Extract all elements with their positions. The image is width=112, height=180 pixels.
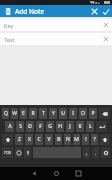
staticText: Y xyxy=(52,110,55,117)
button[interactable]: Emoji xyxy=(15,147,22,158)
button[interactable]: G xyxy=(46,121,54,132)
staticText: ! xyxy=(85,136,87,143)
button[interactable]: ? xyxy=(91,134,98,145)
staticText: N xyxy=(66,136,70,143)
button[interactable]: Save xyxy=(100,6,111,17)
button[interactable]: Z xyxy=(15,134,23,145)
staticText: M xyxy=(74,136,79,143)
button[interactable]: Home xyxy=(45,167,67,180)
button[interactable]: B xyxy=(55,134,62,145)
button[interactable]: V xyxy=(45,134,53,145)
button[interactable]: F xyxy=(36,121,44,132)
staticText: G xyxy=(48,123,52,130)
button[interactable]: Key xyxy=(0,19,112,31)
button[interactable]: , xyxy=(83,147,90,158)
button[interactable]: ! xyxy=(82,134,89,145)
staticText: R xyxy=(31,110,35,117)
button[interactable]: N xyxy=(64,134,71,145)
button[interactable]: Backspace xyxy=(99,108,110,119)
staticText: V xyxy=(47,136,51,143)
staticText: X xyxy=(28,136,31,143)
staticText: W xyxy=(12,110,17,117)
button[interactable]: Shift xyxy=(2,134,13,145)
button[interactable]: Note xyxy=(2,6,13,17)
button[interactable]: I xyxy=(69,108,77,119)
button[interactable]: Recents xyxy=(67,167,89,180)
button[interactable]: . xyxy=(92,147,99,158)
staticText: Key xyxy=(4,22,14,29)
staticText: L xyxy=(89,123,92,130)
button[interactable]: Shift xyxy=(100,134,110,145)
staticText: P xyxy=(91,110,95,117)
staticText: S xyxy=(19,123,22,130)
staticText: E xyxy=(22,110,25,117)
button[interactable]: Discard xyxy=(89,6,100,17)
button[interactable]: R xyxy=(29,108,37,119)
staticText: O xyxy=(81,110,85,117)
staticText: Add Note xyxy=(15,7,45,16)
button[interactable]: O xyxy=(79,108,87,119)
button[interactable]: E xyxy=(20,108,27,119)
button[interactable]: P xyxy=(89,108,97,119)
button[interactable]: Back xyxy=(23,167,45,180)
button[interactable]: Text xyxy=(0,33,112,45)
staticText: H xyxy=(58,123,62,130)
button[interactable]: L xyxy=(86,121,94,132)
button[interactable]: Voice input xyxy=(24,147,31,158)
staticText: T xyxy=(42,110,45,117)
button[interactable]: W xyxy=(11,108,18,119)
button[interactable]: D xyxy=(26,121,34,132)
button[interactable]: C xyxy=(35,134,43,145)
staticText: ? xyxy=(93,136,96,143)
button[interactable]: Clear Text xyxy=(101,34,111,44)
button[interactable]: M xyxy=(73,134,80,145)
staticText: I xyxy=(72,110,74,117)
staticText: J xyxy=(69,123,71,130)
staticText: Q xyxy=(4,110,8,117)
staticText: ?123 xyxy=(4,151,11,155)
button[interactable]: Q xyxy=(2,108,9,119)
staticText: Text xyxy=(4,36,15,43)
staticText: C xyxy=(37,136,41,143)
button[interactable]: Settings xyxy=(101,147,110,158)
staticText: . xyxy=(95,150,97,156)
button[interactable]: Y xyxy=(49,108,57,119)
staticText: A xyxy=(8,123,12,130)
button[interactable]: U xyxy=(59,108,67,119)
button[interactable]: K xyxy=(76,121,84,132)
button[interactable]: Enter xyxy=(96,121,107,132)
staticText: B xyxy=(57,136,61,143)
staticText: K xyxy=(78,123,82,130)
button[interactable]: X xyxy=(25,134,33,145)
button[interactable]: S xyxy=(16,121,24,132)
staticText: Z xyxy=(18,136,21,143)
button[interactable]: Clear Key xyxy=(101,20,111,30)
button[interactable]: J xyxy=(66,121,74,132)
staticText: F xyxy=(39,123,42,130)
button[interactable]: ?123 xyxy=(2,147,13,158)
button[interactable]: T xyxy=(39,108,47,119)
staticText: U xyxy=(61,110,65,117)
staticText: D xyxy=(28,123,32,130)
staticText: , xyxy=(86,150,88,156)
button[interactable]: A xyxy=(5,121,14,132)
button[interactable]: H xyxy=(56,121,64,132)
